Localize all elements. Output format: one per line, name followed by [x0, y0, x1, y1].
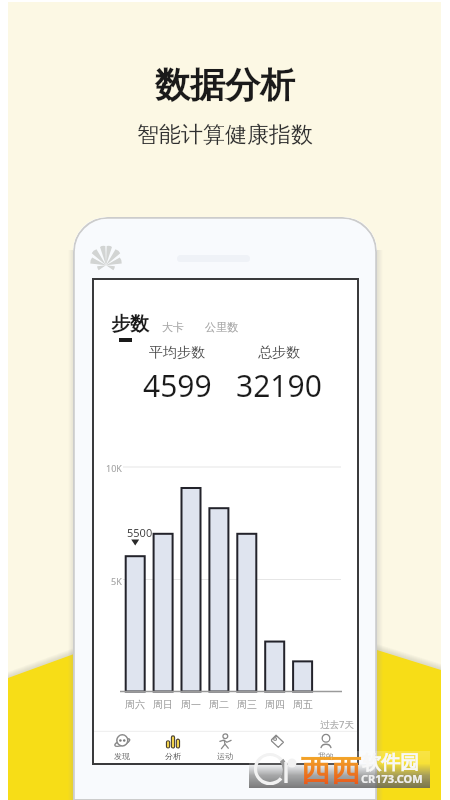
staticText: 步数	[111, 312, 149, 336]
staticText: 周六	[125, 698, 145, 711]
button[interactable]: 公里数	[205, 320, 238, 334]
button[interactable]: 大卡	[162, 320, 184, 334]
staticText: 过去7天	[320, 718, 354, 731]
button[interactable]: 分析	[147, 732, 199, 764]
button[interactable]: 我的	[300, 732, 352, 764]
staticText: 周二	[209, 698, 229, 711]
button[interactable]: 步数	[111, 312, 149, 342]
staticText: 10K	[106, 462, 122, 474]
staticText: 周五	[293, 698, 313, 711]
staticText: 分析	[165, 751, 181, 761]
staticText: 智能计算健康指数	[137, 121, 313, 149]
staticText: 数据分析	[155, 63, 295, 107]
staticText: 5K	[111, 575, 122, 587]
staticText: 软件园	[362, 751, 419, 775]
button[interactable]: 发现	[96, 732, 148, 764]
staticText: 西西	[301, 752, 361, 790]
staticText: CR173.COM	[361, 771, 423, 786]
button[interactable]: 运动	[199, 732, 251, 764]
staticText: 运动	[217, 751, 233, 761]
staticText: 32190	[236, 365, 322, 406]
staticText: 周三	[237, 698, 257, 711]
staticText: 5500	[127, 525, 153, 540]
staticText: 4599	[143, 365, 212, 406]
staticText: 周日	[153, 698, 173, 711]
staticText: 平均步数	[149, 344, 205, 362]
staticText: 周四	[265, 698, 285, 711]
staticText: 发现	[114, 751, 130, 761]
staticText: 我的	[318, 751, 334, 761]
button[interactable]: 标签	[251, 732, 303, 764]
staticText: 周一	[181, 698, 201, 711]
staticText: 总步数	[258, 344, 300, 362]
